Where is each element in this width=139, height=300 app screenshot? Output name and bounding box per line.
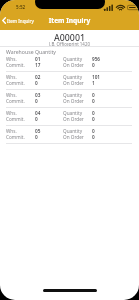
staticText: J.B. Officeprint 1420 <box>0 41 139 47</box>
button[interactable]: Item Inquiry <box>2 14 34 27</box>
staticText: Quantity On Order <box>63 110 92 122</box>
staticText: Quantity On Order <box>63 56 92 68</box>
staticText: Quantity On Order <box>63 128 92 140</box>
staticText: 03 0 <box>35 92 63 104</box>
staticText: Whs. Commit. <box>6 110 35 122</box>
staticText: Warehouse Quantity <box>6 48 57 55</box>
button[interactable]: Whs. Commit. <box>0 54 139 71</box>
staticText: 05 0 <box>35 128 63 140</box>
staticText: 02 0 <box>35 74 63 86</box>
other: Wi-Fi <box>116 4 125 11</box>
staticText: 5:52 <box>16 4 26 10</box>
staticText: 04 0 <box>35 110 63 122</box>
staticText: Item Inquiry <box>0 16 139 25</box>
other: Cellular signal <box>104 4 114 11</box>
staticText: 0 0 <box>92 110 95 122</box>
button[interactable]: Whs. Commit. <box>0 90 139 107</box>
staticText: Whs. Commit. <box>6 92 35 104</box>
staticText: Item Inquiry <box>7 18 34 24</box>
staticText: A00001 <box>0 32 139 44</box>
staticText: 101 1 <box>92 74 101 86</box>
staticText: Whs. Commit. <box>6 128 35 140</box>
staticText: 956 0 <box>92 56 101 68</box>
staticText: 0 0 <box>92 92 95 104</box>
staticText: Quantity On Order <box>63 74 92 86</box>
staticText: 0 0 <box>92 128 95 140</box>
button[interactable]: Whs. Commit. <box>0 72 139 89</box>
staticText: 01 17 <box>35 56 63 68</box>
staticText: Quantity On Order <box>63 92 92 104</box>
staticText: Whs. Commit. <box>6 74 35 86</box>
staticText: Whs. Commit. <box>6 56 35 68</box>
other: Battery <box>127 4 139 11</box>
button[interactable]: Whs. Commit. <box>0 108 139 125</box>
button[interactable]: Whs. Commit. <box>0 126 139 143</box>
